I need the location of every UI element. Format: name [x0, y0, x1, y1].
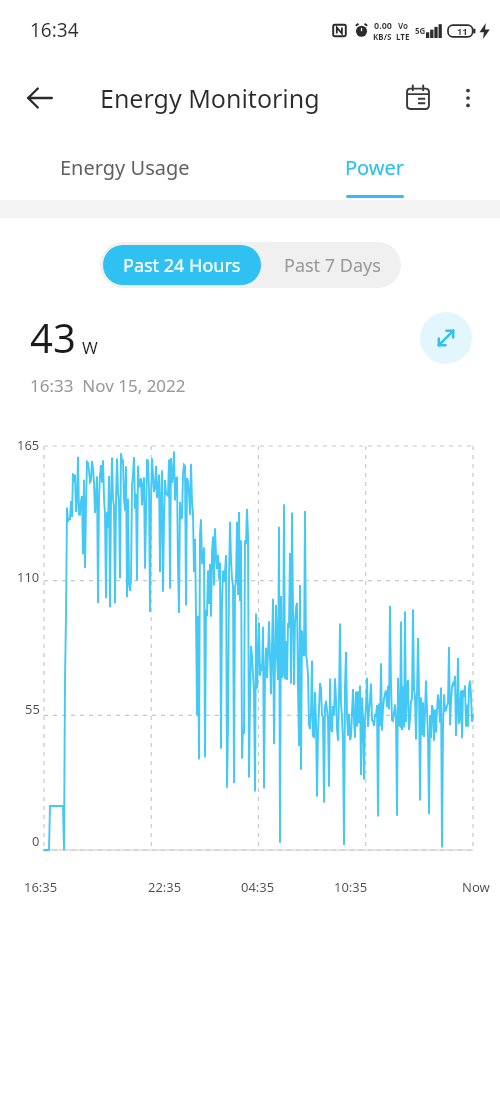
staticText: 22:35 — [148, 878, 182, 896]
button[interactable]: Past 7 Days — [264, 242, 401, 288]
staticText: 16:33 Nov 15, 2022 — [30, 374, 186, 397]
button[interactable]: Past 24 Hours — [103, 245, 261, 285]
staticText: 0 — [32, 832, 40, 850]
staticText: KB/S — [373, 31, 392, 42]
staticText: Power — [345, 154, 405, 181]
button[interactable]: Expand chart — [420, 312, 472, 364]
staticText: 16:35 — [24, 878, 58, 896]
button[interactable]: More options — [444, 74, 492, 122]
staticText: 10:35 — [334, 878, 368, 896]
staticText: 04:35 — [241, 878, 275, 896]
staticText: 16:34 — [30, 17, 79, 43]
button[interactable]: Back — [12, 70, 68, 126]
button[interactable]: Energy Usage — [0, 136, 250, 198]
staticText: Energy Monitoring — [100, 81, 320, 115]
staticText: 165 — [17, 436, 40, 454]
staticText: 55 — [25, 700, 40, 718]
staticText: LTE — [396, 31, 410, 42]
staticText: 11 — [457, 25, 468, 37]
staticText: 43 — [30, 310, 76, 364]
staticText: 5G — [415, 25, 426, 36]
staticText: Vo — [398, 20, 409, 31]
staticText: Now — [462, 878, 490, 896]
staticText: Past 24 Hours — [123, 253, 241, 278]
button[interactable]: Select date — [392, 72, 444, 124]
staticText: 110 — [17, 568, 40, 586]
button[interactable]: Power — [250, 136, 500, 198]
staticText: 0.00 — [374, 19, 392, 31]
staticText: Energy Usage — [60, 154, 190, 181]
staticText: Past 7 Days — [284, 253, 381, 278]
staticText: W — [82, 336, 98, 359]
